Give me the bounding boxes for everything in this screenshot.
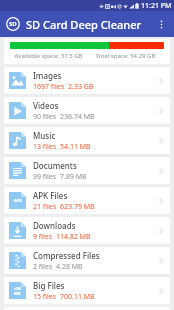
staticText: 114.82 MB xyxy=(56,232,91,242)
button[interactable]: Images xyxy=(4,67,170,94)
staticText: 1697 files xyxy=(33,82,65,92)
button[interactable]: Music xyxy=(4,127,170,154)
staticText: 4.28 MB xyxy=(56,262,83,272)
button[interactable]: APK xyxy=(4,187,170,214)
button[interactable]: Videos xyxy=(4,97,170,124)
staticText: 99 files xyxy=(33,172,57,182)
staticText: APK Files xyxy=(33,190,68,201)
staticText: 2.33 GB xyxy=(68,82,94,92)
button[interactable]: Documents xyxy=(4,157,170,184)
button[interactable]: More options xyxy=(151,14,171,34)
staticText: 11:21 PM xyxy=(141,1,172,11)
staticText: 90 files xyxy=(33,112,57,122)
staticText: Total space: 54.29 GB xyxy=(87,52,164,60)
staticText: 700.11 MB xyxy=(60,292,95,302)
staticText: APK xyxy=(14,198,22,203)
staticText: 7.89 MB xyxy=(60,172,87,182)
staticText: MB xyxy=(14,291,21,296)
staticText: SD Card Deep Cleaner xyxy=(26,17,142,32)
staticText: 2 files xyxy=(33,262,53,272)
staticText: SD xyxy=(9,20,17,28)
staticText: >50 xyxy=(14,286,21,291)
staticText: Music xyxy=(33,130,56,141)
staticText: 236.74 MB xyxy=(60,112,95,122)
staticText: Documents xyxy=(33,160,77,171)
staticText: 9 files xyxy=(33,232,53,242)
staticText: 13 files xyxy=(33,142,57,152)
staticText: Compressed Files xyxy=(33,250,100,261)
staticText: Available space: 37.5 GB xyxy=(10,52,87,60)
staticText: Videos xyxy=(33,100,59,111)
staticText: 54.11 MB xyxy=(60,142,91,152)
staticText: Downloads xyxy=(33,220,76,231)
button[interactable]: Downloads xyxy=(4,217,170,244)
button[interactable]: Compressed Files xyxy=(4,247,170,274)
staticText: 15 files xyxy=(33,292,57,302)
staticText: 623.79 MB xyxy=(60,202,95,212)
staticText: Images xyxy=(33,70,62,81)
button[interactable]: >50 xyxy=(4,277,170,304)
staticText: Big Files xyxy=(33,280,65,291)
staticText: 21 files xyxy=(33,202,57,212)
